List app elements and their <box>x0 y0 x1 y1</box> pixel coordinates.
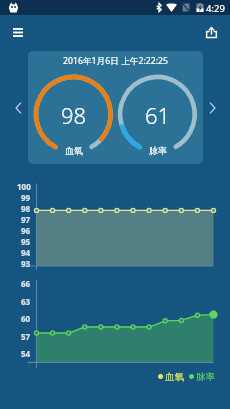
staticText: 97 <box>21 214 31 224</box>
staticText: 2016年1月6日 上午2:22:25 <box>63 55 169 67</box>
staticText: 61 <box>145 100 171 130</box>
button[interactable]: Next <box>204 100 220 116</box>
button[interactable]: Previous <box>10 100 26 116</box>
staticText: 96 <box>21 225 31 235</box>
staticText: 100 <box>17 181 31 191</box>
staticText: 54 <box>21 348 31 358</box>
staticText: 66 <box>21 278 31 288</box>
staticText: 98 <box>61 100 87 130</box>
button[interactable]: Menu <box>6 21 29 44</box>
button[interactable]: 2016年1月6日 上午2:22:25 <box>28 51 203 164</box>
staticText: 93 <box>21 258 31 268</box>
staticText: 98 <box>21 203 31 213</box>
staticText: 脉率 <box>196 371 215 383</box>
staticText: 脉率 <box>149 145 167 156</box>
staticText: 95 <box>21 236 31 246</box>
staticText: 血氧 <box>65 145 83 156</box>
button[interactable]: Share <box>200 21 223 44</box>
staticText: 60 <box>21 313 31 323</box>
staticText: 57 <box>21 331 31 341</box>
staticText: 94 <box>21 247 31 257</box>
staticText: 血氧 <box>165 371 184 383</box>
staticText: 63 <box>21 296 31 306</box>
staticText: 99 <box>21 192 31 202</box>
staticText: 4:29 <box>206 2 225 14</box>
button[interactable]: 血氧 <box>158 370 215 383</box>
